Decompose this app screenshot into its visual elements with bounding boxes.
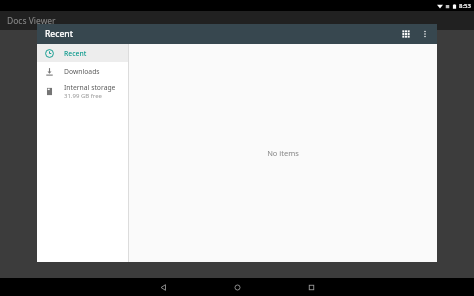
staticText: Downloads [64,67,100,76]
staticText: No items [267,148,299,158]
staticText: Docs Viewer [7,15,56,27]
button[interactable]: Grid view [396,24,416,44]
button[interactable]: Home [228,278,246,296]
staticText: 31.99 GB free [64,92,102,100]
button[interactable]: Recents [302,278,320,296]
staticText: 8:53 [459,2,471,10]
button[interactable]: Recent [37,44,128,62]
staticText: Internal storage [64,83,116,92]
staticText: Recent [64,49,87,58]
button[interactable]: Internal storage [37,80,128,102]
button[interactable]: Back [154,278,172,296]
staticText: Recent [45,28,73,40]
button[interactable]: Downloads [37,62,128,80]
button[interactable]: More options [416,25,434,43]
